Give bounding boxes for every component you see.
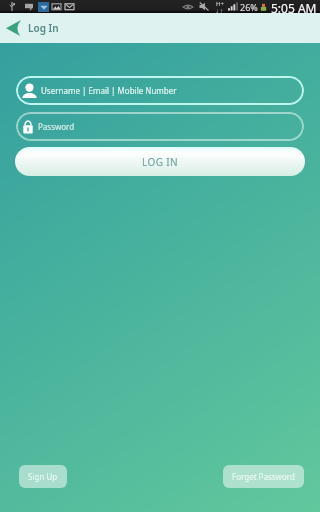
button[interactable]: LOG IN	[15, 147, 305, 176]
staticText: LOG IN	[142, 155, 179, 169]
staticText: Forget Password	[232, 471, 295, 482]
button[interactable]: Forget Password	[223, 465, 304, 488]
staticText: 26%	[240, 1, 258, 13]
staticText: ↓↑	[215, 8, 224, 13]
button[interactable]: Back	[0, 13, 26, 43]
button[interactable]: Password	[16, 112, 304, 141]
staticText: Username | Email | Mobile Number	[41, 85, 177, 96]
staticText: H+	[216, 0, 224, 8]
staticText: Log In	[28, 21, 59, 35]
button[interactable]: Sign Up	[19, 465, 67, 488]
staticText: Sign Up	[28, 471, 58, 482]
staticText: 5:05 AM	[271, 0, 317, 13]
button[interactable]: Username | Email | Mobile Number	[16, 76, 304, 105]
staticText: Password	[38, 121, 75, 132]
